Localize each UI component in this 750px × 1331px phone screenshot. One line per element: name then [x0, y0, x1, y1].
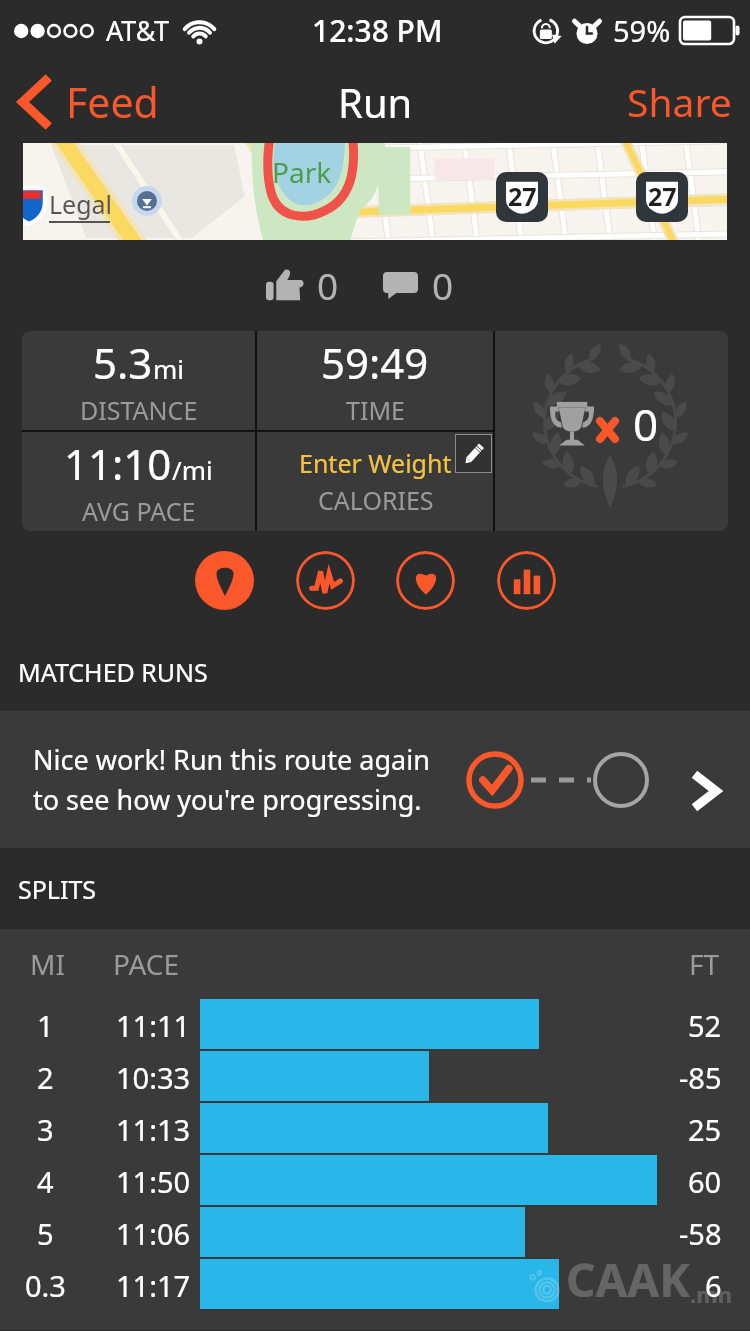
staticText: AVG PACE [82, 494, 196, 528]
staticText: 11:06 [116, 1214, 191, 1253]
staticText: MI [30, 945, 65, 983]
button[interactable]: Likes [260, 250, 345, 320]
button[interactable]: Nice work! Run this route again [0, 711, 750, 848]
staticText: 52 [688, 1006, 722, 1045]
staticText: SPLITS [18, 872, 97, 906]
staticText: Nice work! Run this route again [33, 741, 430, 778]
staticText: CALORIES [318, 483, 434, 517]
button[interactable]: Edit weight [455, 434, 492, 473]
staticText: 11:10 [64, 435, 172, 492]
staticText: 5.3 [93, 334, 153, 391]
staticText: 1 [37, 1006, 54, 1045]
staticText: mi [153, 351, 185, 386]
staticText: FT [689, 945, 720, 983]
staticText: -58 [679, 1214, 722, 1253]
staticText: PACE [113, 945, 180, 983]
staticText: .mn [690, 1279, 732, 1309]
staticText: 27 [648, 179, 677, 213]
button[interactable]: Splits chart [497, 551, 556, 610]
staticText: 11:17 [116, 1266, 191, 1305]
staticText: 0 [317, 260, 339, 310]
button[interactable]: Map [195, 551, 254, 610]
staticText: /mi [172, 452, 213, 487]
staticText: 3 [37, 1110, 54, 1149]
staticText: 25 [688, 1110, 722, 1149]
staticText: 59% [613, 11, 671, 50]
staticText: 0.3 [25, 1266, 66, 1305]
staticText: 6 [705, 1266, 722, 1305]
staticText: 12:38 PM [312, 10, 443, 51]
staticText: TIME [346, 393, 405, 427]
staticText: Enter Weight [299, 446, 452, 480]
staticText: to see how you're progressing. [33, 781, 422, 818]
staticText: 0 [432, 260, 454, 310]
staticText: 59:49 [321, 334, 429, 391]
staticText: Share [627, 75, 732, 128]
staticText: 11:13 [116, 1110, 191, 1149]
staticText: 5 [37, 1214, 54, 1253]
staticText: DISTANCE [80, 393, 198, 427]
staticText: CAAK [566, 1248, 690, 1311]
staticText: 4 [37, 1162, 54, 1201]
staticText: 10:33 [116, 1058, 191, 1097]
staticText: 2 [37, 1058, 54, 1097]
button[interactable]: Share [609, 65, 750, 138]
staticText: 0 [633, 394, 659, 454]
staticText: Run [338, 75, 413, 129]
staticText: 60 [688, 1162, 722, 1201]
button[interactable]: Pace [296, 551, 355, 610]
staticText: Legal [49, 187, 113, 221]
button[interactable]: Comments [377, 250, 460, 320]
staticText: 11:11 [116, 1006, 191, 1045]
button[interactable]: Feed [0, 66, 175, 138]
button[interactable]: Heart rate [396, 551, 455, 610]
staticText: 11:50 [116, 1162, 191, 1201]
staticText: 27 [508, 179, 537, 213]
staticText: MATCHED RUNS [18, 655, 208, 689]
staticText: -85 [679, 1058, 722, 1097]
staticText: AT&T [106, 12, 169, 49]
staticText: Park [272, 153, 332, 191]
staticText: Feed [66, 74, 159, 130]
